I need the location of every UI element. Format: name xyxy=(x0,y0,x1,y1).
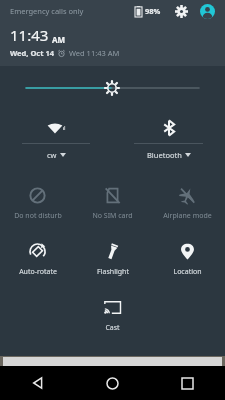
staticText: Bluetooth xyxy=(147,150,182,160)
button[interactable]: Airplane mode xyxy=(150,178,225,234)
button[interactable]: Back xyxy=(0,366,75,400)
staticText: Auto-rotate xyxy=(19,267,57,277)
button[interactable]: Home xyxy=(75,366,150,400)
staticText: Location xyxy=(173,267,202,277)
staticText: Cast xyxy=(105,323,120,333)
staticText: No SIM card xyxy=(92,211,133,221)
staticText: Do not disturb xyxy=(14,211,62,221)
staticText: cw xyxy=(47,150,57,160)
button[interactable]: Wi-Fi xyxy=(0,112,112,168)
staticText: Emergency calls only xyxy=(10,6,84,16)
button[interactable]: Cast xyxy=(75,290,150,346)
button[interactable]: User profile xyxy=(197,1,217,21)
button[interactable]: No SIM card xyxy=(75,178,150,234)
button[interactable]: Flashlight xyxy=(75,234,150,290)
button[interactable]: Location xyxy=(150,234,225,290)
staticText: Airplane mode xyxy=(163,211,212,221)
button[interactable]: Bluetooth xyxy=(112,112,225,168)
button[interactable]: Do not disturb xyxy=(0,178,75,234)
staticText: AM xyxy=(52,34,66,45)
button[interactable]: Settings xyxy=(171,1,191,21)
staticText: Wed, Oct 14 xyxy=(10,48,54,58)
button[interactable]: Auto-rotate xyxy=(0,234,75,290)
button[interactable]: Brightness xyxy=(0,76,225,100)
staticText: Wed 11:43 AM xyxy=(69,48,120,58)
button[interactable]: Recent apps xyxy=(150,366,225,400)
staticText: Flashlight xyxy=(97,267,129,277)
staticText: 98% xyxy=(145,6,161,16)
staticText: 11:43 xyxy=(10,25,49,45)
